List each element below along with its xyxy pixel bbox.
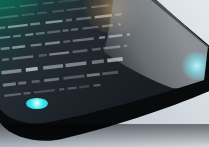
button[interactable]: Code editor on phone [0, 0, 209, 147]
